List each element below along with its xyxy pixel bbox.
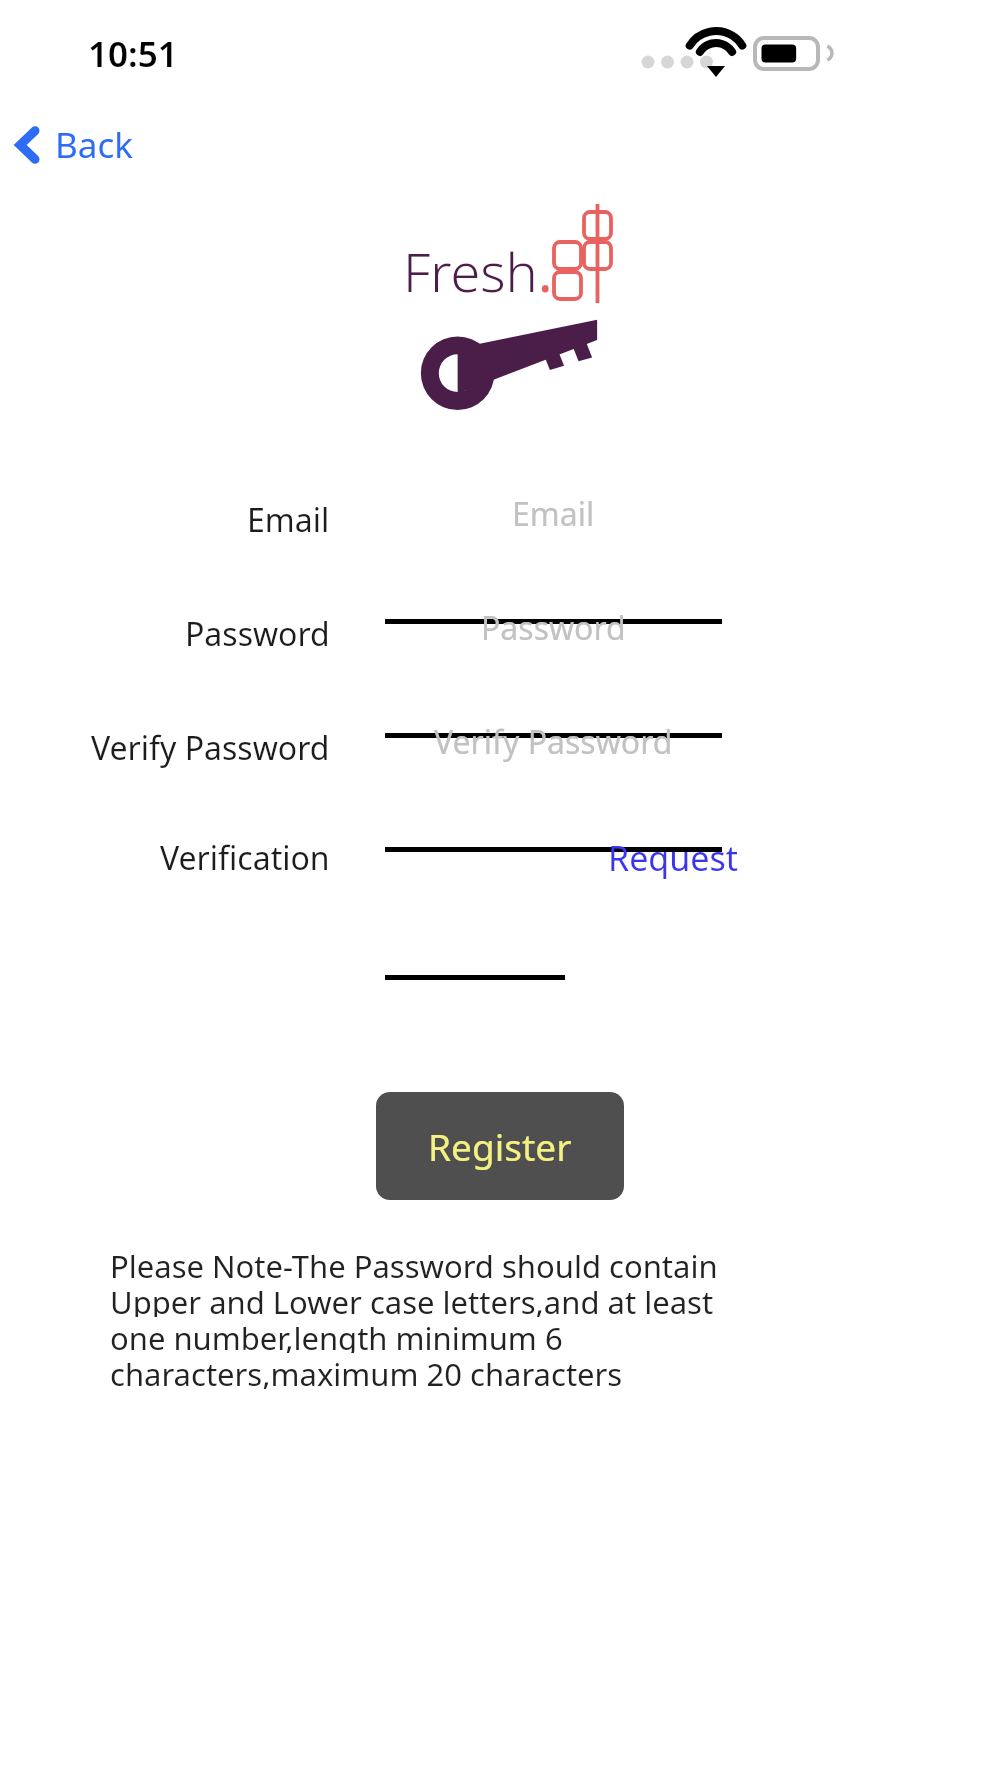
button[interactable]: Register bbox=[376, 1092, 624, 1200]
staticText: Verify Password bbox=[434, 720, 673, 764]
staticText: characters,maximum 20 characters bbox=[110, 1353, 623, 1389]
staticText: Fresh bbox=[403, 234, 538, 308]
button[interactable]: Request bbox=[592, 828, 754, 888]
staticText: Register bbox=[428, 1121, 572, 1171]
staticText: Verification bbox=[160, 836, 330, 880]
staticText: one number,length minimum 6 bbox=[110, 1317, 563, 1353]
button[interactable]: Password bbox=[385, 600, 722, 738]
button[interactable]: Verify Password bbox=[385, 714, 722, 852]
button[interactable]: Email bbox=[385, 486, 722, 624]
staticText: Please Note-The Password should contain bbox=[110, 1245, 718, 1281]
button[interactable] bbox=[385, 824, 565, 980]
button[interactable]: Back bbox=[4, 114, 143, 176]
other: Key bbox=[413, 318, 599, 410]
staticText: Request bbox=[608, 835, 738, 881]
staticText: Email bbox=[247, 498, 330, 542]
staticText: . bbox=[538, 234, 553, 308]
staticText: 10:51 bbox=[88, 30, 178, 78]
staticText: Password bbox=[185, 612, 330, 656]
staticText: Back bbox=[55, 121, 133, 169]
staticText: Password bbox=[481, 606, 626, 650]
staticText: Email bbox=[512, 492, 595, 536]
staticText: Verify Password bbox=[91, 726, 330, 770]
staticText: Upper and Lower case letters,and at leas… bbox=[110, 1281, 714, 1317]
